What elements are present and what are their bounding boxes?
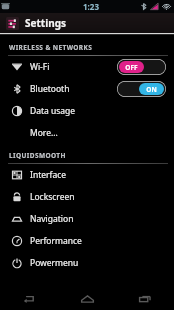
staticText: Powermenu bbox=[30, 257, 166, 269]
staticText: More... bbox=[30, 127, 166, 139]
staticText: OFF bbox=[125, 63, 138, 72]
button[interactable]: Navigation bbox=[0, 208, 174, 230]
staticText: Navigation bbox=[30, 213, 166, 225]
button[interactable]: Toggle off bbox=[117, 59, 166, 75]
button[interactable]: Settings app icon bbox=[5, 16, 20, 31]
staticText: 1:23 bbox=[83, 1, 99, 12]
button[interactable]: Powermenu bbox=[0, 252, 174, 274]
staticText: Performance bbox=[30, 235, 166, 247]
staticText: ON bbox=[146, 85, 157, 94]
button[interactable]: Bluetooth bbox=[0, 78, 174, 100]
staticText: LIQUIDSMOOTH bbox=[9, 151, 66, 160]
button[interactable]: Performance bbox=[0, 230, 174, 252]
button[interactable]: Back bbox=[0, 288, 58, 310]
staticText: Interface bbox=[30, 169, 166, 181]
staticText: Lockscreen bbox=[30, 191, 166, 203]
button[interactable]: Recent apps bbox=[116, 288, 174, 310]
button[interactable]: Home bbox=[58, 288, 116, 310]
button[interactable]: More... bbox=[0, 122, 174, 144]
staticText: WIRELESS & NETWORKS bbox=[9, 43, 93, 52]
button[interactable]: Data usage bbox=[0, 100, 174, 122]
staticText: Data usage bbox=[30, 105, 166, 117]
button[interactable]: Toggle on bbox=[117, 81, 166, 97]
button[interactable]: Lockscreen bbox=[0, 186, 174, 208]
staticText: Wi-Fi bbox=[30, 61, 117, 73]
button[interactable]: Wi-Fi bbox=[0, 56, 174, 78]
button[interactable]: Interface bbox=[0, 164, 174, 186]
staticText: Bluetooth bbox=[30, 83, 117, 95]
staticText: Settings bbox=[25, 16, 66, 30]
